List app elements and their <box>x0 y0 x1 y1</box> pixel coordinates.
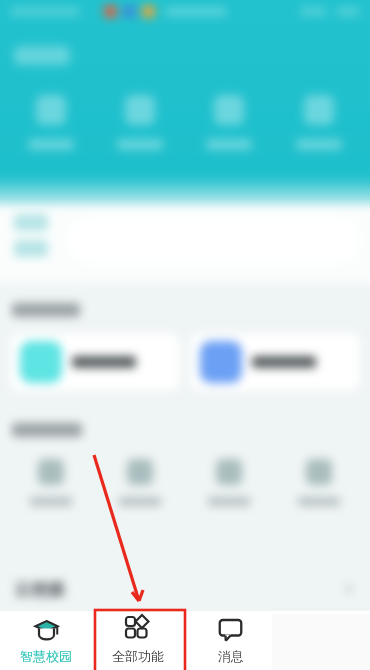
button[interactable] <box>10 333 180 391</box>
button[interactable] <box>190 333 360 391</box>
button[interactable]: 智慧校园 <box>0 611 92 670</box>
staticText: 云校媒 <box>14 579 65 600</box>
button[interactable]: 消息 <box>184 611 277 670</box>
staticText: 全部功能 <box>112 648 164 664</box>
button[interactable]: 全部功能 <box>92 611 184 670</box>
staticText: 消息 <box>218 648 244 664</box>
staticText: 智慧校园 <box>20 648 72 664</box>
